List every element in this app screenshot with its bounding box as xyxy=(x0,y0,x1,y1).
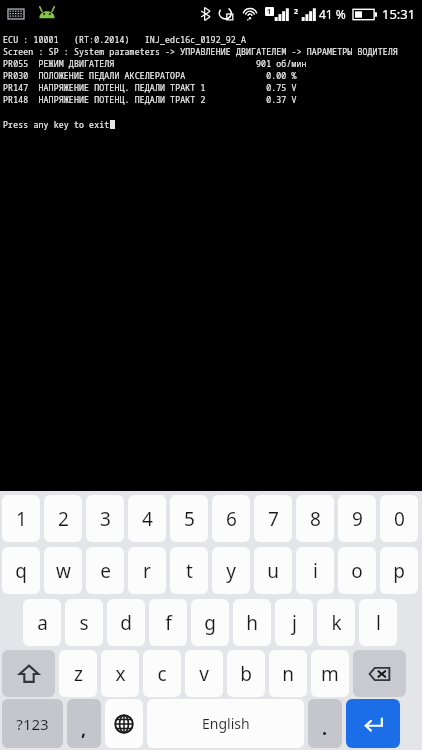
button[interactable]: e xyxy=(86,547,124,594)
button[interactable]: g xyxy=(191,599,229,646)
staticText: Press any key to exit xyxy=(3,119,110,130)
button[interactable]: n xyxy=(269,650,307,697)
button[interactable]: Shift xyxy=(2,650,55,697)
staticText: d xyxy=(120,610,132,636)
button[interactable]: , xyxy=(67,699,101,748)
button[interactable]: d xyxy=(107,599,145,646)
staticText: x xyxy=(115,661,126,687)
staticText: u xyxy=(267,558,279,584)
button[interactable]: r xyxy=(128,547,166,594)
staticText: , xyxy=(81,717,87,742)
staticText: a xyxy=(37,610,48,636)
button[interactable]: 9 xyxy=(338,495,376,542)
staticText: g xyxy=(204,610,216,636)
button[interactable]: Backspace xyxy=(353,650,406,697)
button[interactable]: u xyxy=(254,547,292,594)
staticText: 8 xyxy=(310,506,321,532)
staticText: 2 xyxy=(58,506,69,532)
button[interactable]: z xyxy=(59,650,97,697)
staticText: 6 xyxy=(226,506,237,532)
staticText: 0.00 % xyxy=(256,70,297,81)
staticText: m xyxy=(321,661,339,687)
button[interactable]: 4 xyxy=(128,495,166,542)
button[interactable]: k xyxy=(317,599,355,646)
staticText: i xyxy=(313,558,318,584)
button[interactable]: 0 xyxy=(380,495,418,542)
staticText: PR147 НАПРЯЖЕНИЕ ПОТЕНЦ. ПЕДАЛИ ТРАКТ 1 xyxy=(3,82,206,93)
button[interactable]: 8 xyxy=(296,495,334,542)
staticText: 41 % xyxy=(319,6,346,22)
button[interactable]: p xyxy=(380,547,418,594)
button[interactable]: Enter xyxy=(346,699,400,748)
button[interactable]: a xyxy=(23,599,61,646)
button[interactable]: v xyxy=(185,650,223,697)
staticText: c xyxy=(157,661,167,687)
staticText: 4 xyxy=(142,506,153,532)
button[interactable]: . xyxy=(308,699,342,748)
button[interactable]: f xyxy=(149,599,187,646)
button[interactable]: Change language xyxy=(105,699,143,748)
staticText: q xyxy=(15,558,27,584)
staticText: 0 xyxy=(394,506,405,532)
staticText: 901 об/мин xyxy=(256,58,307,69)
staticText: ?123 xyxy=(16,714,49,734)
staticText: l xyxy=(376,610,381,636)
staticText: 2 xyxy=(294,7,299,17)
button[interactable]: i xyxy=(296,547,334,594)
staticText: 1 xyxy=(267,7,272,16)
staticText: PR030 ПОЛОЖЕНИЕ ПЕДАЛИ АКСЕЛЕРАТОРА xyxy=(3,70,186,81)
button[interactable]: t xyxy=(170,547,208,594)
button[interactable]: j xyxy=(275,599,313,646)
button[interactable]: English xyxy=(147,699,304,748)
staticText: e xyxy=(100,558,111,584)
staticText: 9 xyxy=(352,506,363,532)
staticText: f xyxy=(165,610,172,636)
staticText: 7 xyxy=(268,506,279,532)
staticText: Screen : SP : System parameters -> УПРАВ… xyxy=(3,46,398,57)
staticText: s xyxy=(79,610,89,636)
staticText: ECU : 10001 (RT:0.2014) INJ_edc16c_0192_… xyxy=(3,34,247,45)
staticText: PR148 НАПРЯЖЕНИЕ ПОТЕНЦ. ПЕДАЛИ ТРАКТ 2 xyxy=(3,94,206,105)
staticText: y xyxy=(226,558,236,584)
button[interactable]: y xyxy=(212,547,250,594)
button[interactable]: m xyxy=(311,650,349,697)
button[interactable]: c xyxy=(143,650,181,697)
staticText: 3 xyxy=(100,506,111,532)
staticText: t xyxy=(186,558,193,584)
staticText: n xyxy=(282,661,294,687)
staticText: 15:31 xyxy=(382,5,416,23)
button[interactable]: 2 xyxy=(44,495,82,542)
button[interactable]: x xyxy=(101,650,139,697)
staticText: 0.37 V xyxy=(256,94,297,105)
staticText: b xyxy=(240,661,252,687)
button[interactable]: l xyxy=(359,599,397,646)
staticText: w xyxy=(56,558,71,584)
staticText: v xyxy=(199,661,209,687)
staticText: 5 xyxy=(184,506,195,532)
staticText: z xyxy=(74,661,83,687)
button[interactable]: s xyxy=(65,599,103,646)
staticText: h xyxy=(246,610,258,636)
staticText: . xyxy=(322,716,328,741)
button[interactable]: b xyxy=(227,650,265,697)
button[interactable]: 1 xyxy=(2,495,40,542)
staticText: English xyxy=(202,714,250,733)
staticText: p xyxy=(393,558,405,584)
button[interactable]: w xyxy=(44,547,82,594)
staticText: j xyxy=(292,610,297,636)
button[interactable]: ?123 xyxy=(2,699,63,748)
button[interactable]: 7 xyxy=(254,495,292,542)
button[interactable]: h xyxy=(233,599,271,646)
staticText: PR055 РЕЖИМ ДВИГАТЕЛЯ xyxy=(3,58,115,69)
staticText: 1 xyxy=(16,506,27,532)
staticText: o xyxy=(351,558,363,584)
button[interactable]: 3 xyxy=(86,495,124,542)
staticText: k xyxy=(331,610,342,636)
staticText: r xyxy=(143,558,151,584)
button[interactable]: 6 xyxy=(212,495,250,542)
button[interactable]: o xyxy=(338,547,376,594)
button[interactable]: 5 xyxy=(170,495,208,542)
button[interactable]: q xyxy=(2,547,40,594)
staticText: 0.75 V xyxy=(256,82,297,93)
